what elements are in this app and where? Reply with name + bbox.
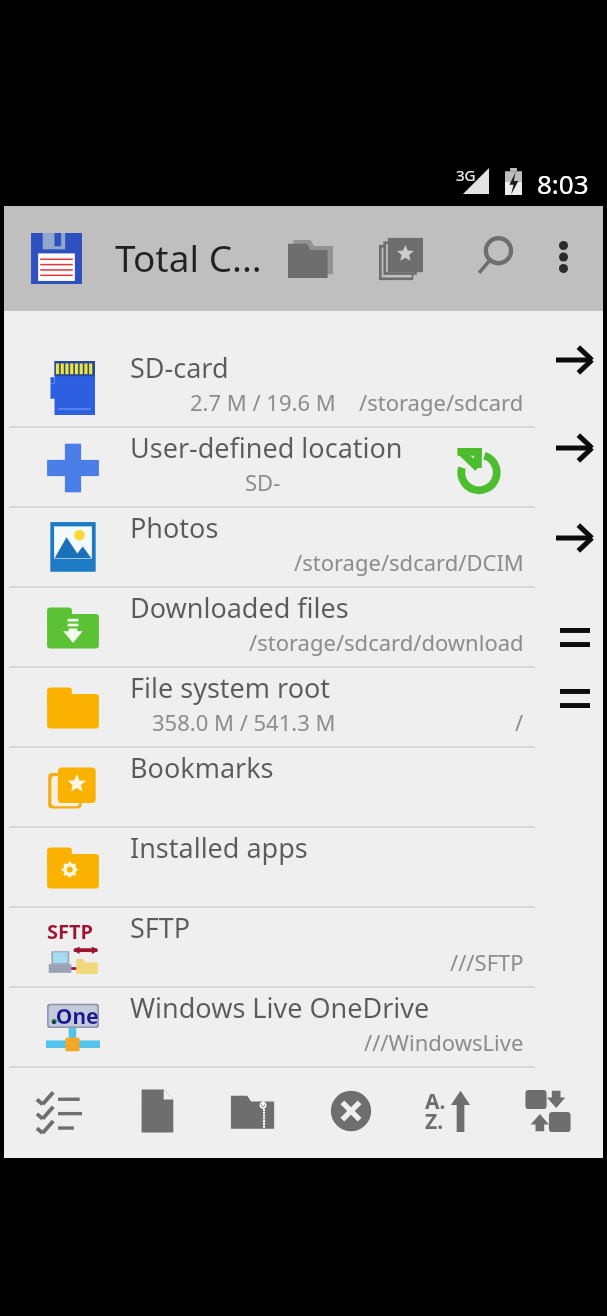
staticText: SFTP	[130, 909, 191, 946]
button[interactable]: Photos	[4, 508, 603, 588]
staticText: /storage/sdcard	[359, 387, 524, 417]
button[interactable]: New file	[118, 1073, 194, 1149]
staticText: 8:03	[537, 166, 589, 201]
button[interactable]: Zip	[215, 1073, 291, 1149]
button[interactable]: Folders	[278, 227, 342, 291]
staticText: Total C...	[115, 232, 262, 282]
staticText: Downloaded files	[130, 589, 349, 626]
staticText: User-defined location	[130, 429, 403, 466]
staticText: Bookmarks	[130, 749, 274, 786]
staticText: Windows Live OneDrive	[130, 989, 430, 1026]
button[interactable]: User-defined location	[4, 428, 603, 508]
button[interactable]: Downloaded files	[4, 588, 603, 668]
staticText: SD-card	[130, 349, 229, 386]
button[interactable]: Move	[510, 1073, 586, 1149]
button[interactable]: Select	[21, 1073, 97, 1149]
staticText: A.	[425, 1087, 446, 1116]
staticText: Photos	[130, 509, 219, 546]
staticText: 2.7 M / 19.6 M	[190, 387, 336, 417]
button[interactable]: Installed apps	[4, 828, 603, 908]
staticText: ///WindowsLive	[364, 1027, 524, 1057]
button[interactable]: File system root	[4, 668, 603, 748]
button[interactable]: Search	[461, 225, 525, 289]
button[interactable]: .One	[4, 988, 603, 1068]
button[interactable]: More options	[533, 227, 593, 287]
staticText: File system root	[130, 669, 331, 706]
staticText: .One	[51, 1002, 99, 1031]
staticText: /	[515, 707, 524, 737]
staticText: Installed apps	[130, 829, 308, 866]
staticText: SFTP	[47, 918, 93, 945]
button[interactable]: Sort	[411, 1073, 487, 1149]
staticText: /storage/sdcard/DCIM	[294, 547, 524, 577]
button[interactable]: Close	[313, 1073, 389, 1149]
button[interactable]: Bookmarks	[4, 748, 603, 828]
button[interactable]: Bookmarks	[369, 227, 433, 291]
staticText: ///SFTP	[450, 947, 524, 977]
button[interactable]: SD-card	[4, 348, 603, 428]
staticText: 3G	[456, 165, 476, 185]
staticText: SD-	[245, 467, 281, 497]
button[interactable]: SFTP	[4, 908, 603, 988]
staticText: /storage/sdcard/download	[249, 627, 524, 657]
staticText: 358.0 M / 541.3 M	[152, 707, 336, 737]
staticText: Z.	[425, 1107, 444, 1136]
